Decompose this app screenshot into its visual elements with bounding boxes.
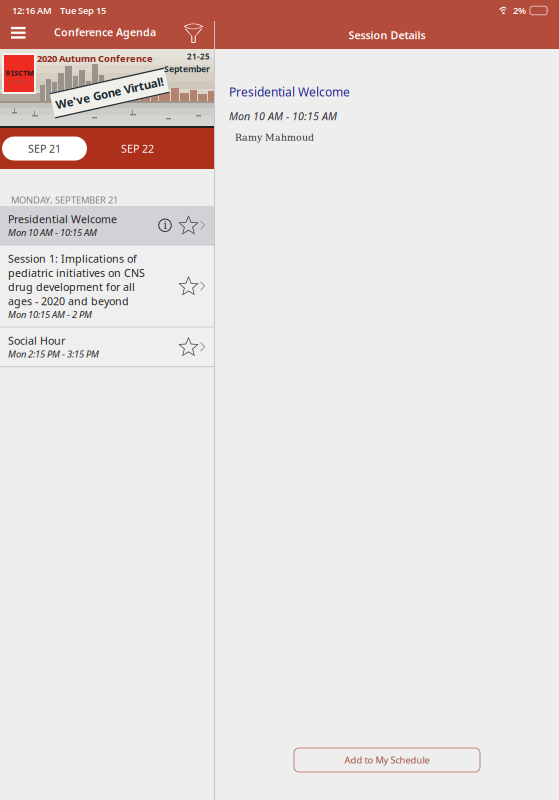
button[interactable]: Social Hour: [0, 328, 214, 367]
button[interactable]: Menu: [11, 27, 25, 38]
staticText: SEP 21: [28, 141, 61, 156]
staticText: Session 1: Implications of pediatric ini…: [8, 252, 145, 308]
staticText: Mon 10 AM - 10:15 AM: [8, 226, 97, 239]
button[interactable]: Filter: [183, 22, 204, 43]
staticText: 21-25: [187, 51, 210, 62]
button[interactable]: SEP 23: [188, 136, 273, 160]
button[interactable]: Session 1: Implications of pediatric ini…: [0, 246, 214, 328]
staticText: Session Details: [348, 28, 425, 42]
staticText: 2020 Autumn Conference: [37, 52, 153, 65]
staticText: Social Hour: [8, 334, 65, 348]
staticText: Mon 10 AM - 10:15 AM: [229, 109, 337, 123]
button[interactable]: SEP 21: [2, 136, 87, 160]
staticText: September: [164, 63, 210, 75]
staticText: Ramy Mahmoud: [229, 132, 314, 143]
button[interactable]: Presidential Welcome: [0, 206, 214, 246]
staticText: ISCTM: [11, 68, 34, 78]
staticText: We've Gone Virtual!: [54, 85, 164, 101]
staticText: Tue Sep 15: [60, 4, 106, 17]
staticText: Presidential Welcome: [8, 212, 117, 226]
staticText: SEP 23: [214, 141, 247, 156]
staticText: Conference Agenda: [54, 25, 156, 39]
staticText: 2%: [513, 4, 526, 17]
staticText: i: [163, 219, 166, 231]
staticText: SEP 22: [121, 141, 154, 156]
staticText: MONDAY, SEPTEMBER 21: [11, 194, 118, 206]
staticText: 12:16 AM: [12, 4, 52, 17]
staticText: Mon 10:15 AM - 2 PM: [8, 308, 92, 321]
staticText: Add to My Schedule: [344, 754, 429, 766]
staticText: Presidential Welcome: [229, 84, 350, 100]
button[interactable]: Add to My Schedule: [294, 748, 480, 772]
staticText: Mon 2:15 PM - 3:15 PM: [8, 348, 99, 360]
button[interactable]: SEP 22: [95, 136, 180, 160]
